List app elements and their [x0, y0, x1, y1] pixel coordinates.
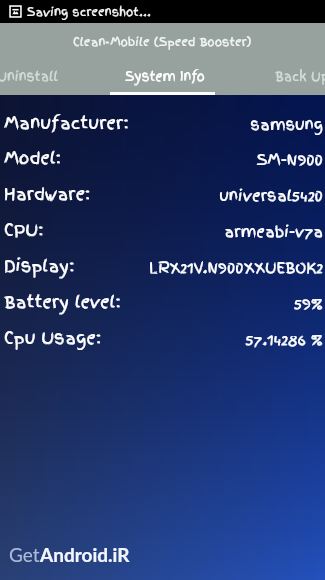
button[interactable]: Uninstall [0, 60, 96, 92]
button[interactable]: Manufacturer: [0, 111, 325, 147]
staticText: LRX21V.N900XXUEBOK2 [0, 257, 323, 279]
button[interactable]: Battery level: [0, 290, 325, 326]
button[interactable]: System Info [96, 60, 233, 92]
staticText: System Info [125, 67, 205, 85]
staticText: samsung [0, 114, 323, 136]
staticText: Back Up [275, 67, 325, 85]
button[interactable]: Model: [0, 146, 325, 182]
staticText: Battery level: [4, 290, 121, 314]
staticText: SM-N900 [0, 149, 323, 171]
staticText: CPU: [4, 218, 44, 242]
staticText: Clean-Mobile (Speed Booster) [73, 33, 252, 50]
staticText: 59% [0, 293, 323, 315]
other: Screenshot saved [9, 5, 22, 18]
button[interactable]: Display: [0, 254, 325, 290]
button[interactable]: Back Up [233, 60, 325, 92]
staticText: Get [9, 543, 40, 566]
staticText: 57.14286 % [0, 329, 323, 351]
staticText: Display: [4, 254, 75, 278]
staticText: Manufacturer: [4, 111, 129, 135]
staticText: Model: [4, 146, 61, 170]
staticText: Uninstall [0, 67, 58, 85]
staticText: armeabi-v7a [0, 221, 323, 243]
staticText: Android.iR [40, 543, 130, 566]
button[interactable]: Hardware: [0, 182, 325, 218]
staticText: Hardware: [4, 182, 91, 206]
staticText: Cpu Usage: [4, 326, 101, 350]
button[interactable]: Cpu Usage: [0, 326, 325, 362]
staticText: universal5420 [0, 185, 323, 207]
button[interactable]: CPU: [0, 218, 325, 254]
staticText: Saving screenshot... [27, 3, 151, 20]
